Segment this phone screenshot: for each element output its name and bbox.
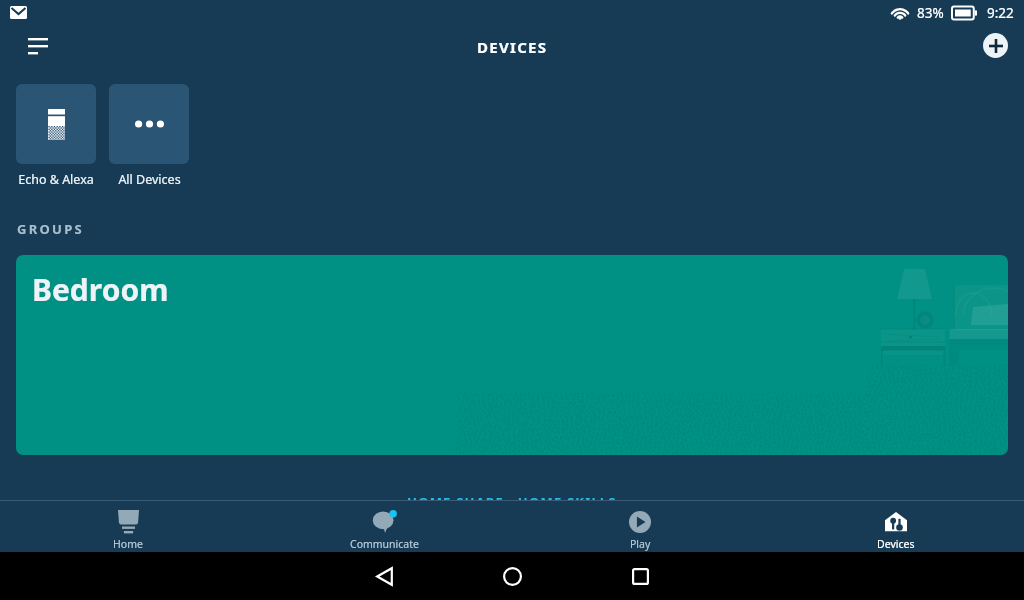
staticText: All Devices bbox=[118, 171, 181, 188]
button[interactable]: Devices bbox=[768, 501, 1024, 552]
button[interactable]: Play bbox=[512, 501, 768, 552]
staticText: HOME SHARE HOME SKILLS bbox=[407, 493, 617, 500]
button[interactable]: Recents bbox=[576, 552, 704, 600]
button[interactable]: Home bbox=[0, 501, 256, 552]
staticText: Home bbox=[113, 537, 143, 551]
staticText: Devices bbox=[877, 537, 915, 551]
button[interactable]: Back bbox=[320, 552, 448, 600]
staticText: Echo & Alexa bbox=[18, 171, 94, 188]
button[interactable]: All Devices bbox=[109, 84, 189, 188]
staticText: GROUPS bbox=[17, 220, 85, 238]
staticText: Bedroom bbox=[32, 269, 169, 310]
button[interactable]: Menu bbox=[22, 29, 54, 61]
staticText: 9:22 bbox=[987, 4, 1014, 22]
button[interactable]: Bedroom bbox=[16, 255, 1008, 455]
staticText: 83% bbox=[917, 4, 944, 22]
button[interactable]: Add device bbox=[983, 33, 1008, 58]
staticText: Play bbox=[630, 537, 651, 551]
staticText: DEVICES bbox=[477, 37, 548, 57]
button[interactable]: Communicate bbox=[256, 501, 512, 552]
staticText: Communicate bbox=[350, 537, 419, 551]
button[interactable]: Echo & Alexa bbox=[16, 84, 96, 188]
button[interactable]: Home bbox=[448, 552, 576, 600]
